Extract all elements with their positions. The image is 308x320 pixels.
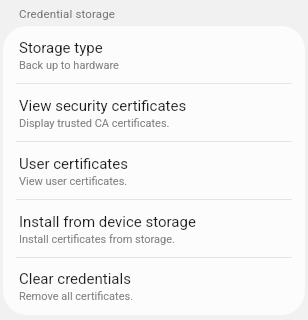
staticText: Storage type: [19, 39, 103, 57]
staticText: View security certificates: [19, 97, 187, 115]
staticText: Display trusted CA certificates.: [19, 117, 170, 130]
button[interactable]: Install from device storage: [3, 200, 305, 258]
staticText: View user certificates.: [19, 175, 128, 188]
staticText: Credential storage: [19, 7, 116, 20]
staticText: User certificates: [19, 155, 128, 173]
staticText: Back up to hardware: [19, 59, 119, 72]
staticText: Install certificates from storage.: [19, 233, 175, 246]
button[interactable]: Storage type: [3, 26, 305, 84]
staticText: Remove all certificates.: [19, 290, 134, 303]
button[interactable]: User certificates: [3, 142, 305, 200]
staticText: Clear credentials: [19, 270, 131, 288]
button[interactable]: Clear credentials: [3, 258, 305, 315]
staticText: Install from device storage: [19, 213, 196, 231]
button[interactable]: View security certificates: [3, 84, 305, 142]
